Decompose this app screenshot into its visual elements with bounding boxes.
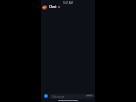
staticText: 9:41 AM	[63, 1, 73, 4]
staticText: Send	[87, 94, 92, 97]
staticText: Message	[52, 95, 65, 99]
button[interactable]: Profile	[44, 94, 48, 98]
button[interactable]: Message	[49, 94, 94, 99]
staticText: Chat	[49, 5, 57, 9]
button[interactable]: Chat	[42, 4, 95, 10]
button[interactable]: Send	[85, 94, 94, 97]
